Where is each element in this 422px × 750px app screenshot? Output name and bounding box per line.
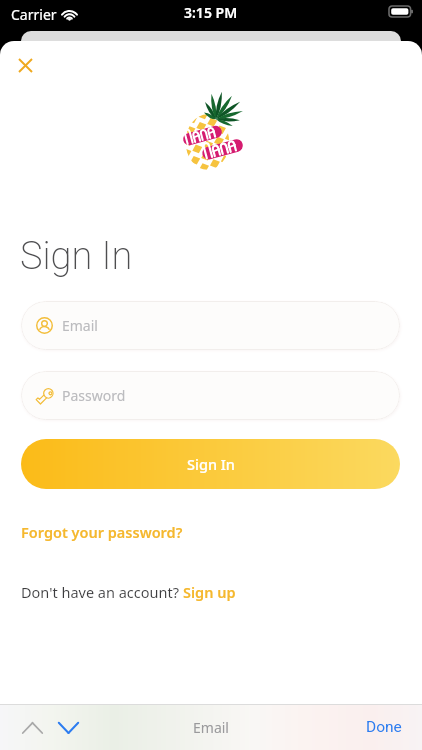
button[interactable]: Previous field [16,711,48,743]
button[interactable]: Sign up [183,582,236,602]
button[interactable]: Sign In [21,439,400,489]
button[interactable]: Close [9,49,39,79]
button[interactable]: Next field [52,711,84,743]
staticText: 3:15 PM [184,3,238,22]
button[interactable]: Done [366,718,402,736]
button[interactable]: Password [21,371,400,420]
staticText: Sign In [20,234,133,279]
staticText: Email [193,718,229,737]
staticText: Sign up [183,582,236,602]
staticText: Forgot your password? [21,522,183,542]
staticText: Don't have an account? [21,582,183,602]
staticText: Password [62,386,126,405]
staticText: Done [366,718,402,736]
staticText: Sign In [187,454,235,474]
staticText: Carrier [11,5,57,24]
button[interactable]: Forgot your password? [21,522,183,542]
button[interactable]: Email [21,301,400,350]
staticText: Email [62,316,98,335]
